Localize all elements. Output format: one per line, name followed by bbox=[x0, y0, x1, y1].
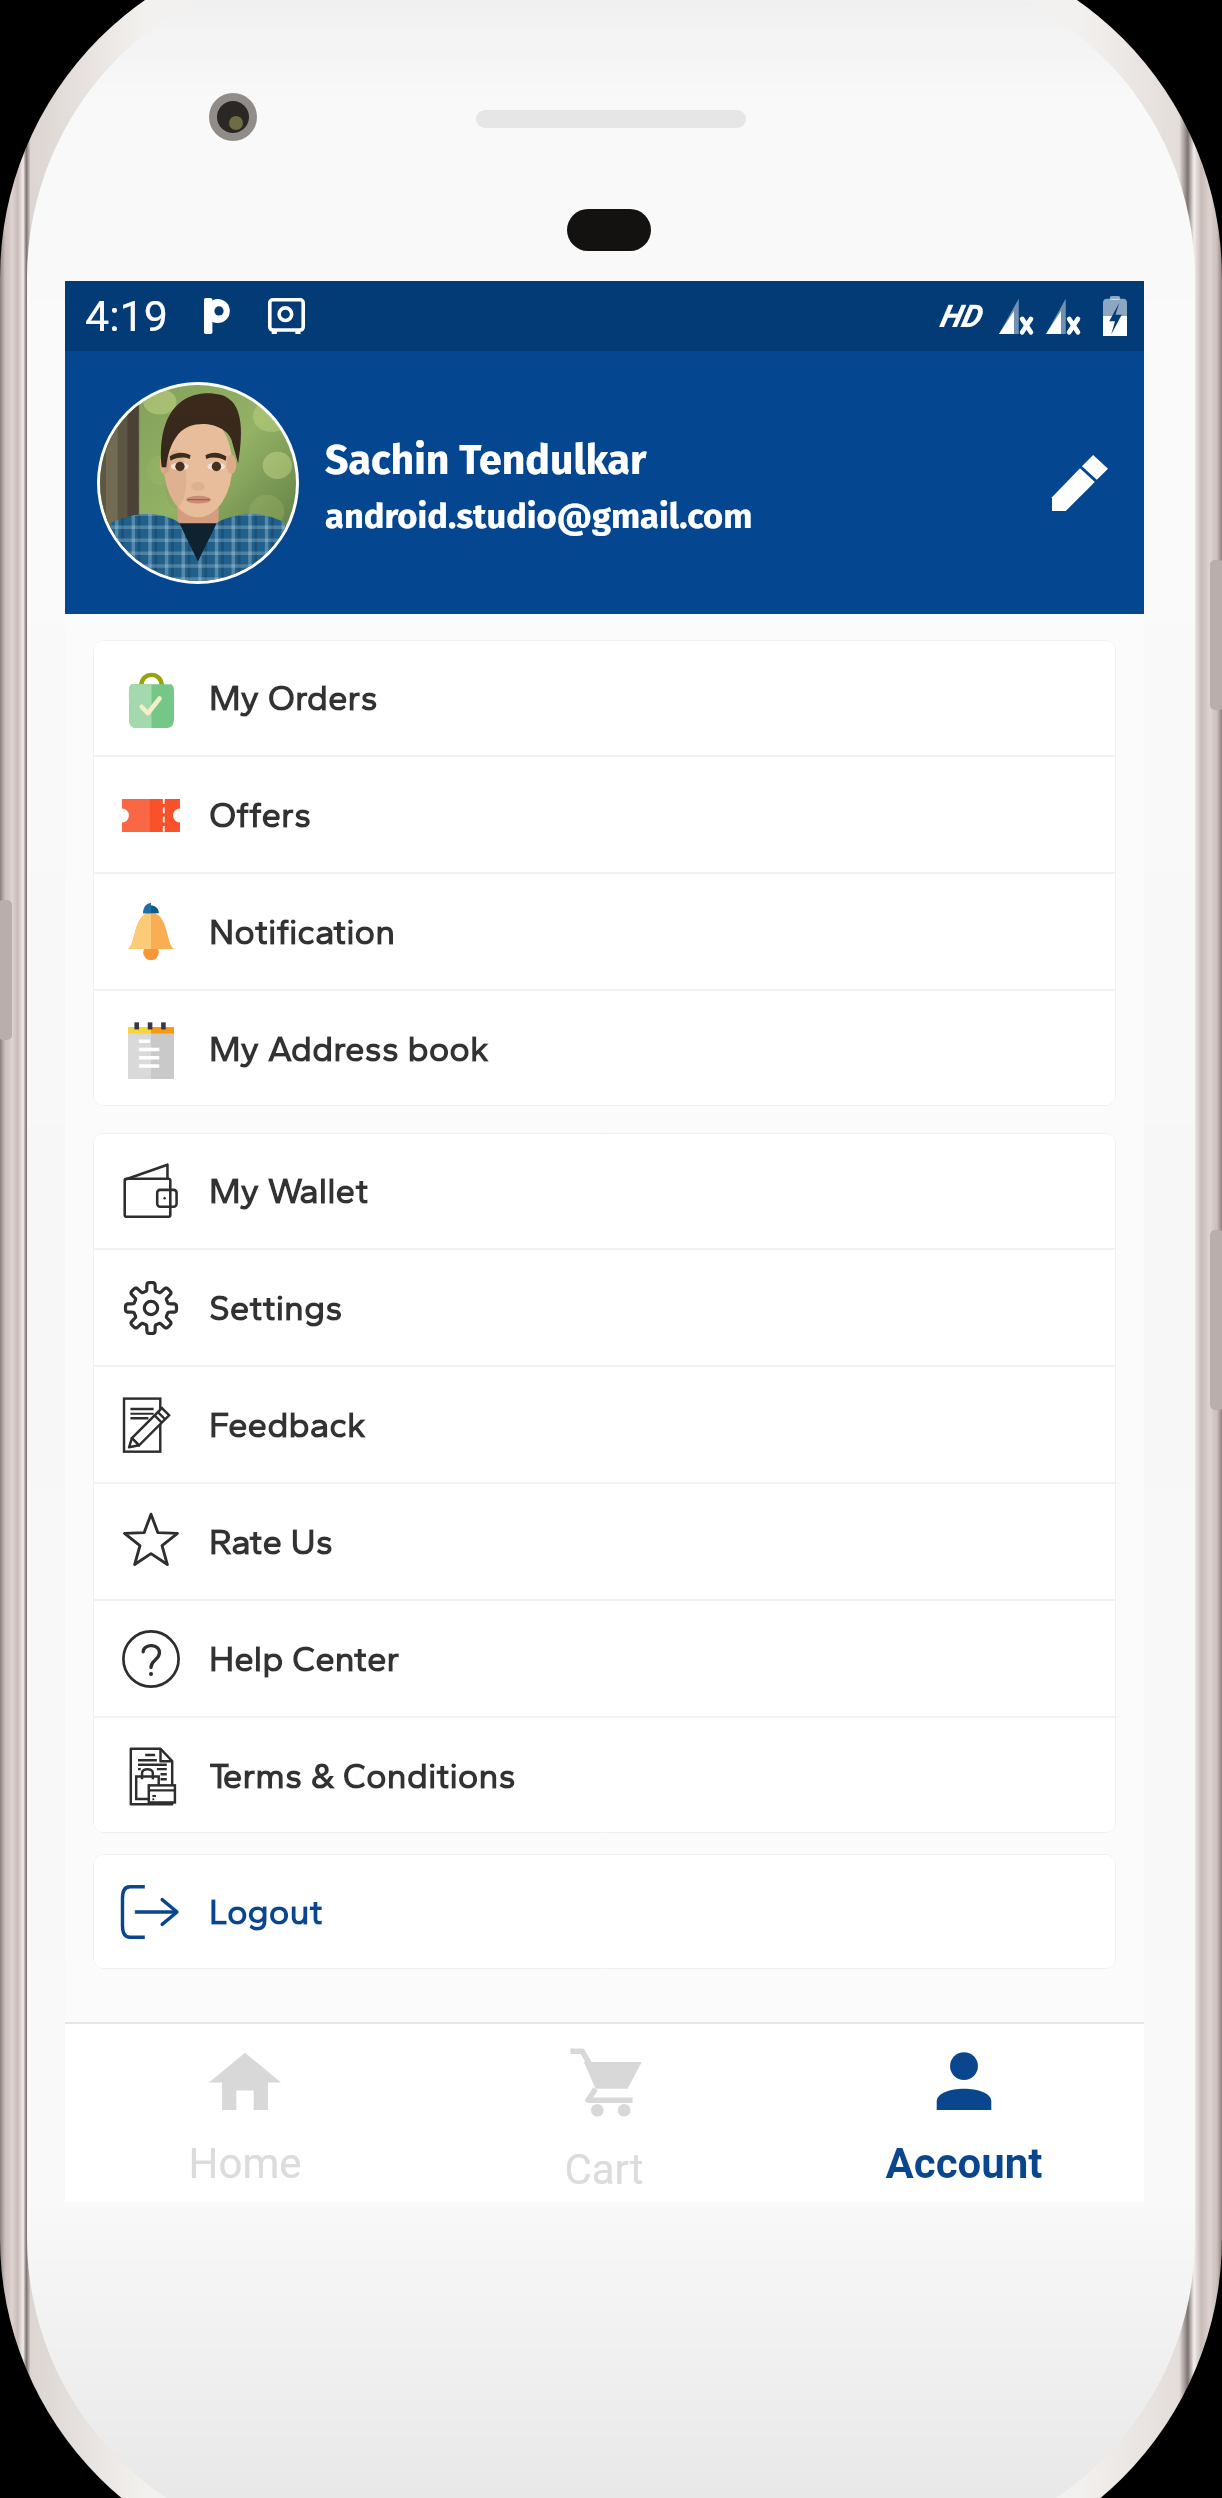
staticText: Rate Us bbox=[209, 1521, 333, 1563]
button[interactable]: Account bbox=[784, 2024, 1144, 2202]
button[interactable]: Settings bbox=[93, 1250, 1116, 1365]
button[interactable]: Edit profile bbox=[1020, 423, 1140, 543]
staticText: Terms & Conditions bbox=[209, 1755, 516, 1797]
button[interactable]: My Orders bbox=[93, 640, 1116, 755]
staticText: Account bbox=[885, 2139, 1043, 2188]
staticText: Offers bbox=[209, 794, 312, 836]
button[interactable]: Help Center bbox=[93, 1601, 1116, 1716]
button[interactable]: Logout bbox=[93, 1854, 1116, 1969]
staticText: Settings bbox=[209, 1287, 343, 1329]
staticText: 4:19 bbox=[85, 291, 168, 341]
button[interactable]: Cart bbox=[424, 2024, 784, 2202]
staticText: Help Center bbox=[209, 1638, 400, 1680]
button[interactable]: My Wallet bbox=[93, 1133, 1116, 1248]
staticText: Cart bbox=[564, 2145, 644, 2194]
button[interactable]: Home bbox=[65, 2024, 424, 2202]
button[interactable]: Rate Us bbox=[93, 1484, 1116, 1599]
button[interactable]: Notification bbox=[93, 874, 1116, 989]
button[interactable]: Feedback bbox=[93, 1367, 1116, 1482]
staticText: android.studio@gmail.com bbox=[325, 496, 753, 537]
staticText: My Wallet bbox=[209, 1170, 369, 1212]
staticText: My Orders bbox=[209, 677, 378, 719]
staticText: Sachin Tendulkar bbox=[325, 436, 647, 485]
staticText: Feedback bbox=[209, 1404, 366, 1446]
staticText: Home bbox=[188, 2139, 302, 2188]
button[interactable]: Offers bbox=[93, 757, 1116, 872]
button[interactable]: Terms & Conditions bbox=[93, 1718, 1116, 1833]
button[interactable]: My Address book bbox=[93, 991, 1116, 1106]
staticText: Notification bbox=[209, 911, 396, 953]
staticText: HD bbox=[939, 298, 980, 334]
staticText: Logout bbox=[209, 1891, 323, 1933]
staticText: My Address book bbox=[209, 1028, 489, 1070]
